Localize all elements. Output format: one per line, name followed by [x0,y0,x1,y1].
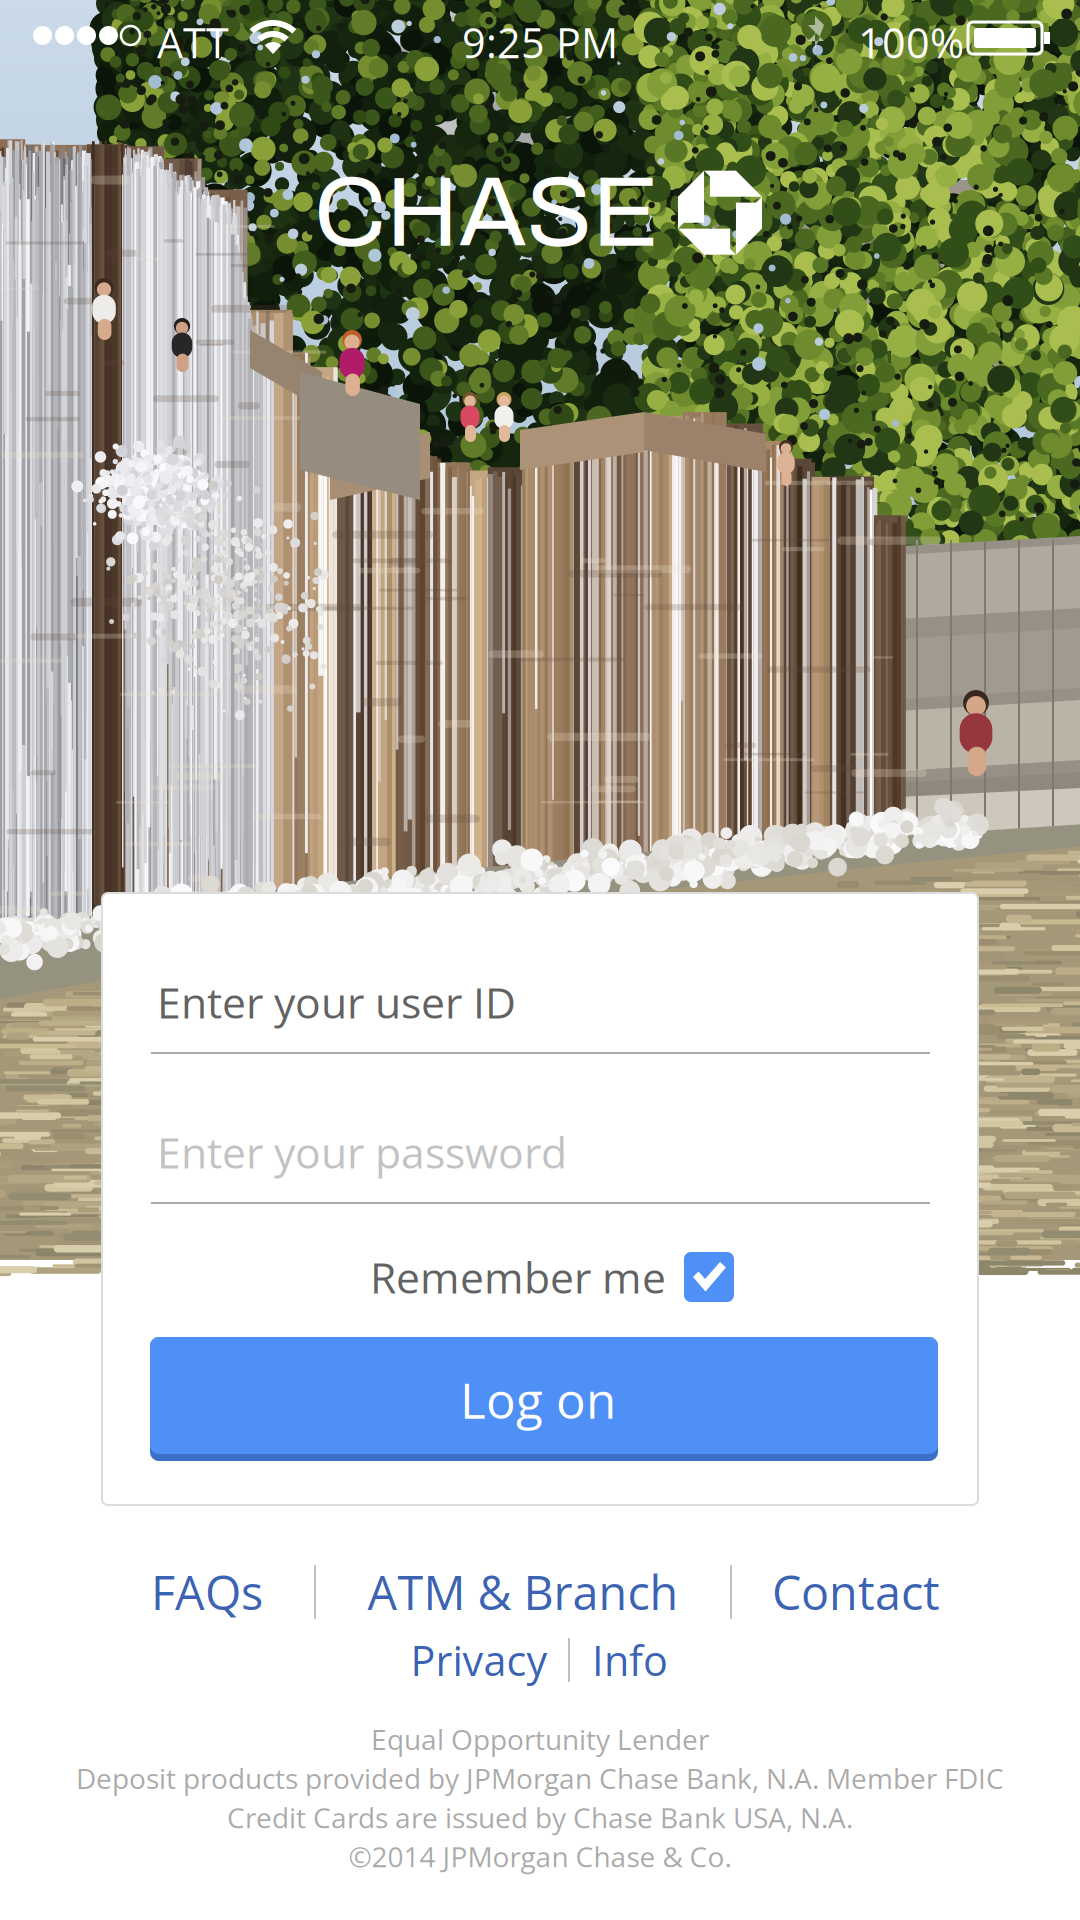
staticText: Info [592,1632,668,1688]
staticText: Enter your user ID [157,973,516,1031]
button[interactable]: Enter your user ID [151,942,930,1054]
staticText: Remember me [370,1248,666,1306]
button[interactable]: Log on [150,1337,938,1461]
staticText: Log on [460,1366,616,1433]
button[interactable]: FAQs [100,1556,314,1628]
button[interactable]: ATM & Branch [316,1556,730,1628]
staticText: 9:25 PM [462,14,618,70]
button[interactable]: Contact [732,1556,980,1628]
staticText: 100% [858,14,964,70]
staticText: ©2014 JPMorgan Chase & Co. [348,1837,731,1875]
button[interactable]: Remember me [370,1245,734,1309]
staticText: FAQs [151,1560,263,1624]
staticText: CHASE [314,159,659,266]
button[interactable]: Privacy [390,1628,568,1692]
staticText: ATM & Branch [367,1560,678,1624]
staticText: Credit Cards are issued by Chase Bank US… [227,1798,853,1836]
button[interactable]: Info [570,1628,690,1692]
staticText: Deposit products provided by JPMorgan Ch… [76,1759,1004,1797]
staticText: ATT [157,14,229,70]
staticText: Privacy [410,1632,547,1688]
staticText: Equal Opportunity Lender [371,1720,709,1758]
staticText: Enter your password [157,1123,567,1181]
button[interactable]: Enter your password [151,1092,930,1204]
staticText: Contact [772,1560,940,1624]
